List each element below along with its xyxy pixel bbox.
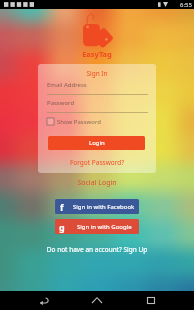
- button[interactable]: f: [55, 199, 139, 214]
- button[interactable]: Password: [47, 99, 148, 113]
- staticText: Sign in with Facebook: [73, 203, 135, 211]
- staticText: Show Password: [57, 118, 101, 126]
- button[interactable]: Forgot Password?: [38, 158, 156, 167]
- staticText: g: [59, 221, 65, 233]
- staticText: 6:55: [180, 1, 192, 9]
- button[interactable]: Do not have an account? Sign Up: [0, 245, 194, 254]
- button[interactable]: g: [55, 219, 139, 234]
- staticText: Password: [47, 99, 75, 107]
- button[interactable]: Show Password: [47, 117, 101, 126]
- staticText: Email Address: [47, 81, 87, 89]
- staticText: Social Login: [0, 178, 194, 188]
- button[interactable]: Login: [48, 136, 145, 150]
- staticText: Login: [89, 139, 105, 147]
- button[interactable]: Email Address: [47, 81, 148, 95]
- button[interactable]: Recents: [141, 291, 161, 310]
- staticText: f: [60, 201, 64, 213]
- staticText: Sign in with Google: [77, 223, 132, 231]
- staticText: EasyTag: [0, 49, 194, 59]
- staticText: Sign In: [38, 69, 156, 78]
- button[interactable]: Home: [87, 291, 107, 310]
- button[interactable]: Back: [34, 291, 54, 310]
